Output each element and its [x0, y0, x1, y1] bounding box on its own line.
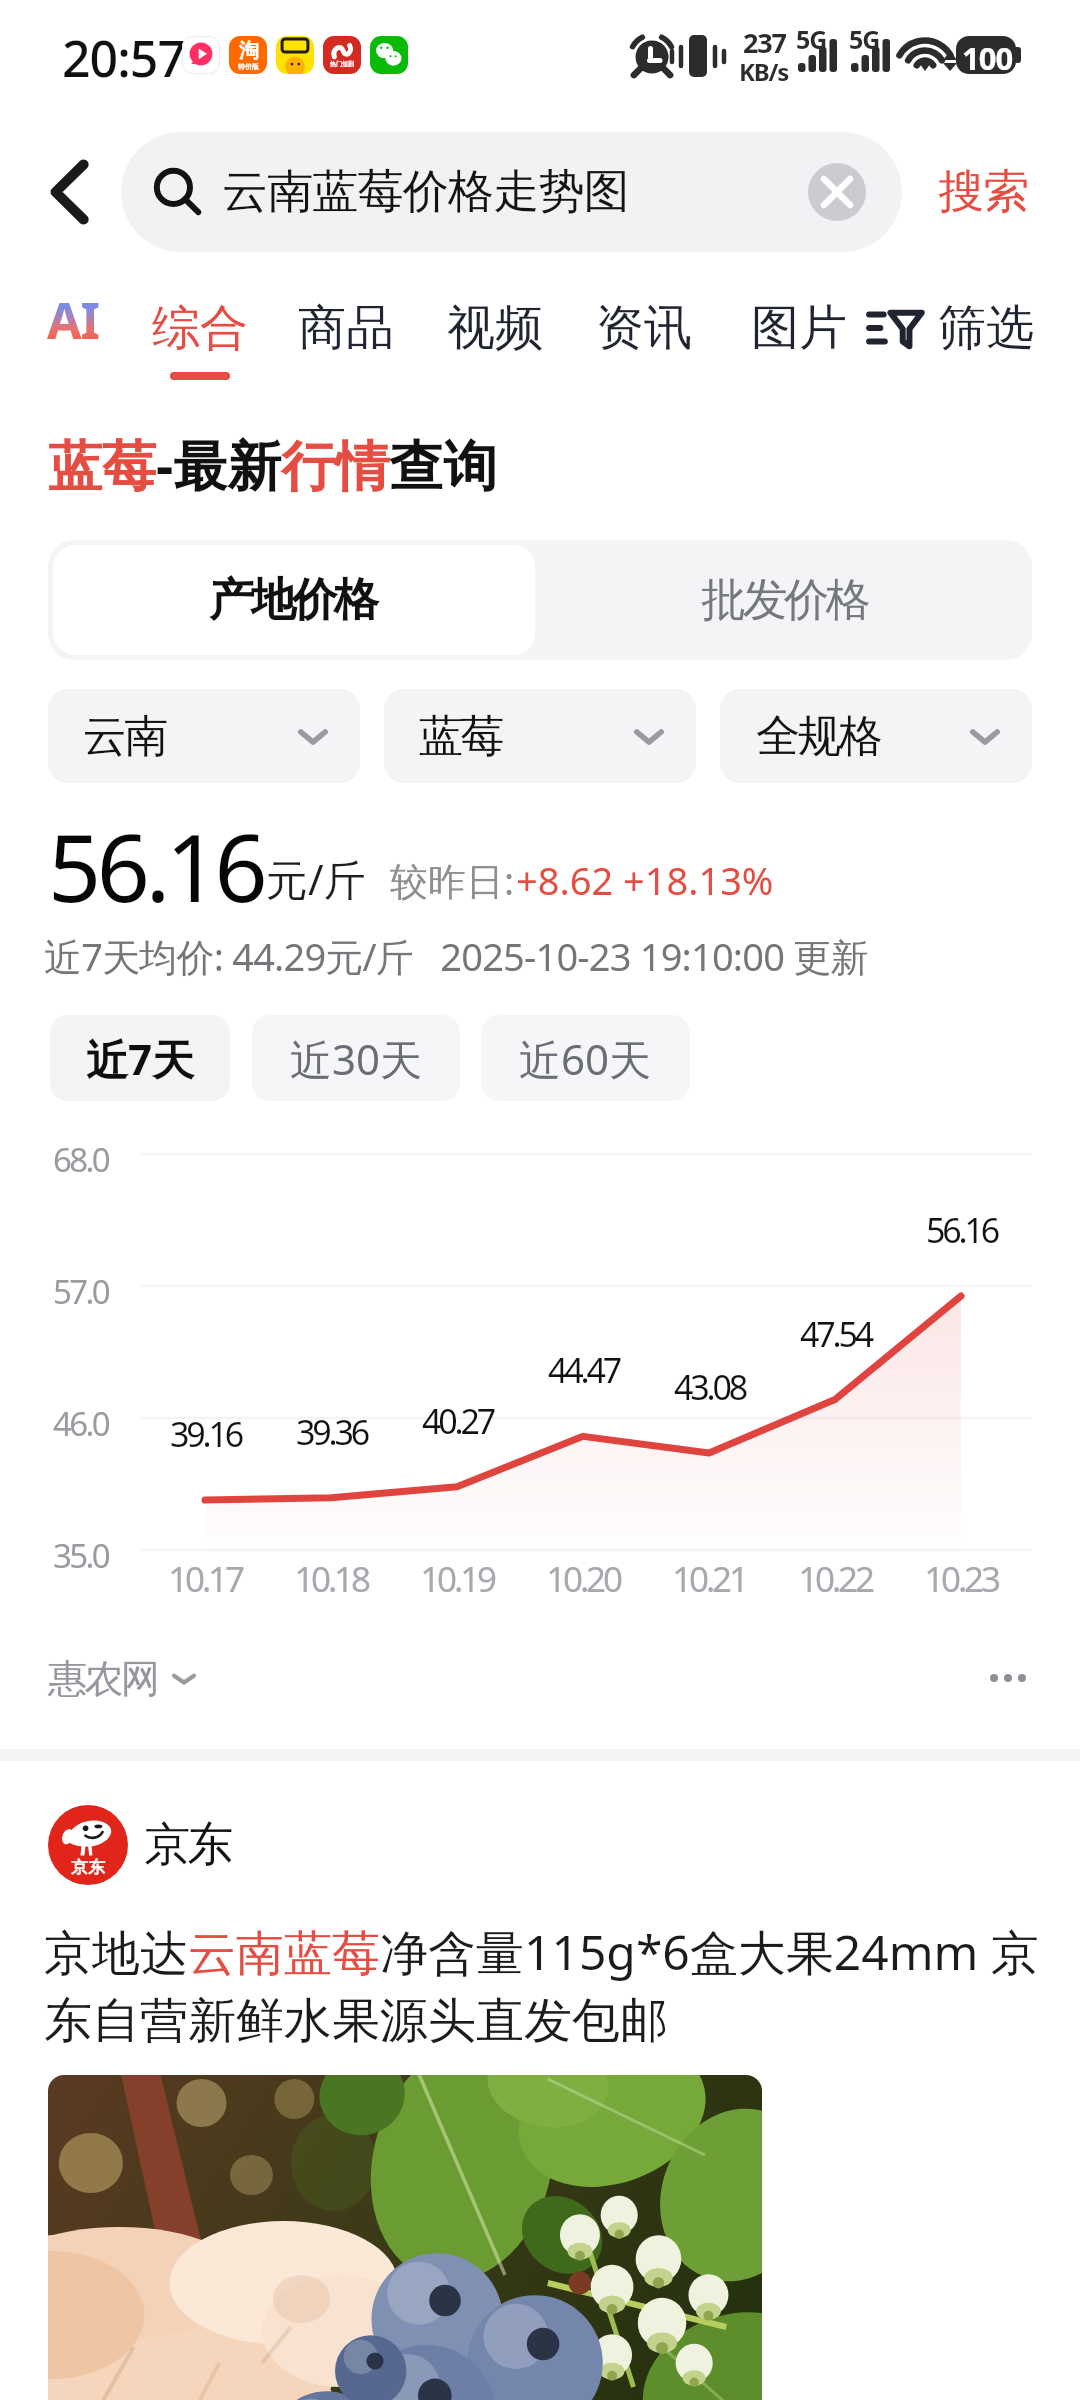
button[interactable]: AI [47, 286, 100, 354]
button[interactable]: 视频 [447, 298, 543, 358]
button[interactable]: 云南 [48, 689, 360, 783]
button[interactable]: 产地价格 [53, 545, 535, 655]
staticText: 39.16 [170, 1411, 241, 1457]
button[interactable]: 图片 [751, 298, 847, 358]
staticText: 近7天均价: 44.29元/斤 2025-10-23 19:10:00 更新 [44, 930, 868, 982]
button[interactable]: 综合 [152, 298, 248, 380]
staticText: 筛选 [938, 298, 1034, 358]
button[interactable]: 批发价格 [540, 540, 1032, 660]
button[interactable]: Clear text [808, 163, 866, 221]
button[interactable]: 近60天 [481, 1015, 690, 1101]
staticText: 特价版 [238, 62, 259, 71]
staticText: 蓝莓 [420, 709, 503, 764]
staticText: 近7天 [86, 1030, 195, 1087]
staticText: 10.20 [546, 1555, 620, 1603]
button[interactable]: 商品 [298, 298, 394, 358]
button[interactable]: 近30天 [252, 1015, 460, 1101]
button[interactable]: 资讯 [596, 298, 692, 358]
staticText: 全规格 [756, 709, 881, 764]
button[interactable]: 筛选 [868, 298, 1034, 358]
staticText: 10.21 [672, 1555, 746, 1603]
staticText: 5G [796, 22, 827, 56]
staticText: KB/s [739, 55, 789, 88]
staticText: 综合 [152, 298, 248, 358]
staticText: 元/斤 [266, 850, 366, 907]
staticText: 云南 [84, 709, 167, 764]
staticText: 47.54 [800, 1311, 871, 1357]
button[interactable]: 全规格 [720, 689, 1032, 783]
staticText: 10.19 [420, 1555, 494, 1603]
staticText: 56.16 [926, 1207, 997, 1253]
staticText: +8.62 +18.13% [516, 854, 774, 906]
staticText: 10.23 [924, 1555, 998, 1603]
button[interactable]: 京东 [48, 1805, 232, 1885]
staticText: 20:57 [62, 24, 185, 92]
staticText: 10.17 [168, 1555, 242, 1603]
button[interactable]: More options [968, 1636, 1048, 1720]
staticText: 较昨日: [390, 854, 515, 906]
button[interactable]: 近7天 [50, 1015, 230, 1101]
staticText: 产地价格 [211, 572, 377, 629]
staticText: 批发价格 [703, 572, 869, 629]
button[interactable]: 云南蓝莓价格走势图 [121, 132, 902, 252]
staticText: 5G [849, 22, 880, 56]
button[interactable]: 惠农网 [48, 1654, 194, 1703]
staticText: 近30天 [290, 1030, 423, 1087]
button[interactable]: Back [22, 132, 118, 252]
staticText: 10.22 [798, 1555, 872, 1603]
staticText: 京东 [71, 1857, 105, 1878]
staticText: 100 [962, 37, 1013, 79]
staticText: 40.27 [422, 1398, 493, 1444]
staticText: 京地达云南蓝莓净含量115g*6盒大果24mm 京 [44, 1919, 1054, 1985]
staticText: 39.36 [296, 1409, 367, 1455]
staticText: 68.0 [53, 1137, 109, 1182]
button[interactable]: Product photo [48, 2075, 762, 2400]
staticText: 43.08 [674, 1364, 745, 1410]
staticText: 237 [743, 24, 786, 61]
staticText: 57.0 [53, 1269, 109, 1314]
staticText: 10.18 [294, 1555, 368, 1603]
button[interactable]: 蓝莓 [384, 689, 696, 783]
staticText: 46.0 [53, 1401, 109, 1446]
staticText: 东自营新鲜水果源头直发包邮 [44, 1991, 668, 2051]
staticText: 35.0 [53, 1533, 109, 1578]
staticText: 蓝莓-最新行情查询 [48, 427, 498, 501]
staticText: 搜索 [939, 163, 1029, 221]
staticText: 云南蓝莓价格走势图 [222, 163, 629, 221]
staticText: 近60天 [519, 1030, 652, 1087]
staticText: 56.16 [48, 803, 264, 930]
staticText: 惠农网 [48, 1654, 158, 1703]
staticText: 44.47 [548, 1347, 619, 1393]
button[interactable]: 搜索 [894, 132, 1074, 252]
staticText: 热门短剧 [330, 60, 354, 68]
staticText: 淘 [239, 38, 259, 63]
button[interactable]: 京地达云南蓝莓净含量115g*6盒大果24mm 京 [44, 1919, 1054, 2045]
staticText: 京东 [146, 1816, 232, 1874]
